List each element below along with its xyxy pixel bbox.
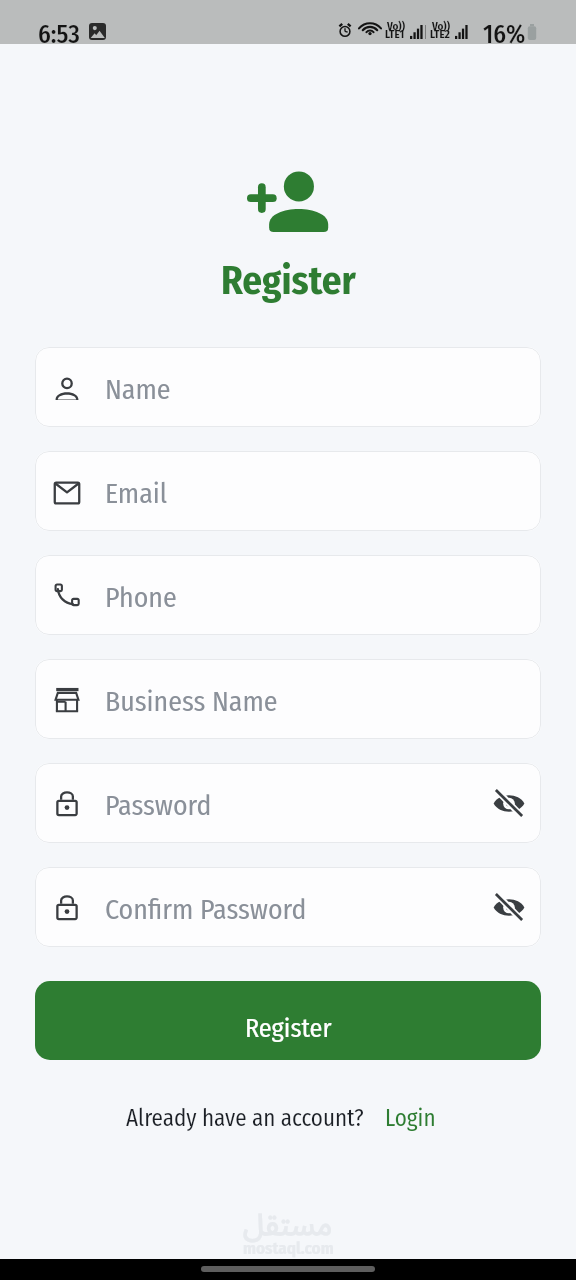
staticText: Vo))	[387, 20, 405, 33]
staticText: 6:53	[38, 20, 80, 50]
staticText: Already have an account?	[126, 1104, 364, 1132]
staticText: مستقل	[243, 1194, 333, 1257]
button[interactable]: Business Name	[35, 659, 541, 739]
staticText: Name	[105, 373, 171, 406]
staticText: mostaql.com	[243, 1238, 334, 1258]
button[interactable]: Login	[385, 1104, 436, 1132]
staticText: LTE2	[430, 28, 450, 41]
staticText: Confirm Password	[105, 893, 307, 926]
button[interactable]: Confirm Password	[35, 867, 541, 947]
staticText: Login	[385, 1104, 436, 1132]
button[interactable]: Phone	[35, 555, 541, 635]
staticText: 16%	[483, 20, 526, 50]
staticText: Register	[245, 1013, 332, 1044]
button[interactable]: Name	[35, 347, 541, 427]
button[interactable]: Email	[35, 451, 541, 531]
staticText: Register	[221, 258, 356, 305]
button[interactable]: Register	[35, 981, 541, 1060]
button[interactable]: Toggle password visibility	[493, 790, 525, 816]
staticText: LTE1	[385, 28, 405, 41]
staticText: Email	[105, 477, 168, 510]
button[interactable]: Password	[35, 763, 541, 843]
staticText: Password	[105, 789, 212, 822]
staticText: Vo))	[432, 20, 450, 33]
staticText: Phone	[105, 581, 177, 614]
staticText: Business Name	[105, 685, 278, 718]
button[interactable]: Toggle password visibility	[493, 894, 525, 920]
